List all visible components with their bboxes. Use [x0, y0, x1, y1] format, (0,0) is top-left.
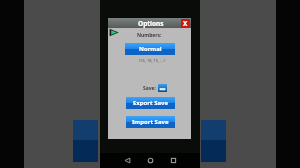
- button[interactable]: Normal: [125, 43, 175, 55]
- button[interactable]: Recents: [170, 157, 177, 164]
- button[interactable]: Options: [108, 18, 191, 28]
- staticText: X: [183, 19, 188, 28]
- button[interactable]: Save: [158, 84, 167, 92]
- button[interactable]: Export Save: [126, 97, 175, 109]
- staticText: Options: [138, 19, 164, 28]
- button[interactable]: Close: [181, 19, 190, 28]
- staticText: Export Save: [133, 99, 169, 107]
- button[interactable]: Import Save: [126, 116, 175, 128]
- button[interactable]: Back: [124, 157, 131, 164]
- button[interactable]: Home: [147, 157, 154, 164]
- staticText: Numbers:: [137, 32, 162, 39]
- staticText: Normal: [139, 45, 162, 53]
- staticText: (16, 18, 15, ...): [139, 58, 165, 63]
- staticText: Save:: [143, 85, 156, 92]
- staticText: Import Save: [132, 118, 169, 126]
- button[interactable]: Play: [109, 28, 119, 37]
